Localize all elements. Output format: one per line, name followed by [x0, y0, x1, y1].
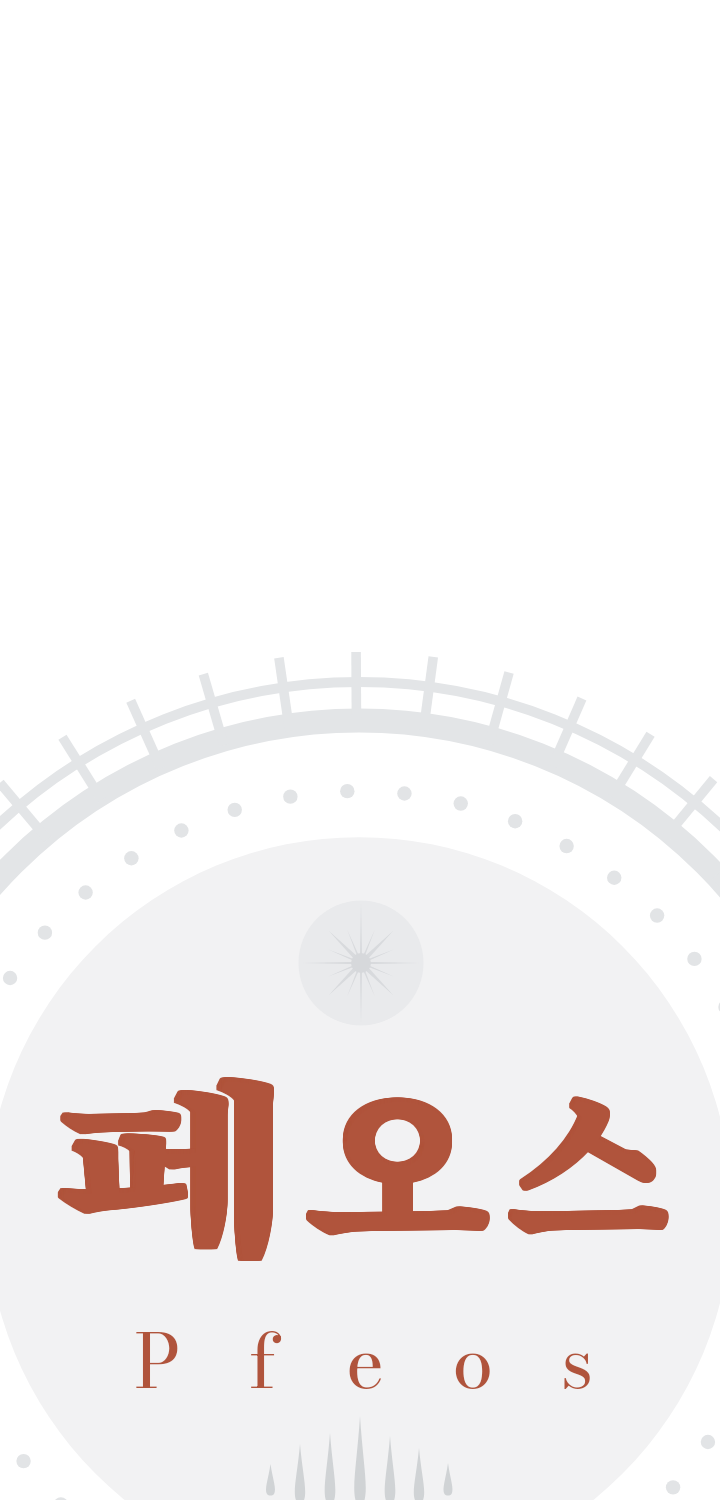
button[interactable]: Pfeos compass emblem: [285, 887, 437, 1039]
button[interactable]: Pfeos logo: [40, 1060, 680, 1410]
